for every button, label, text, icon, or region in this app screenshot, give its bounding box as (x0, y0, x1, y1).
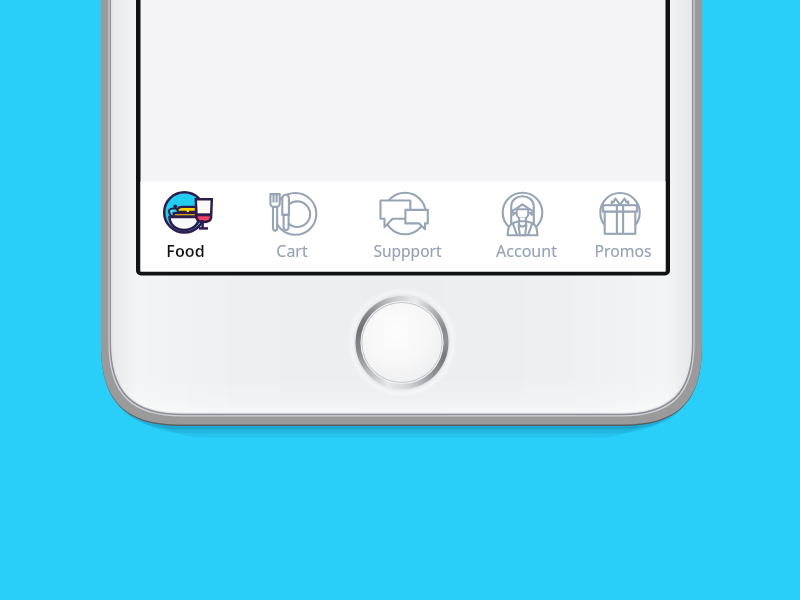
staticText: Promos (594, 240, 652, 262)
staticText: Suppport (373, 240, 442, 261)
staticText: Account (496, 240, 557, 262)
button[interactable]: Cart (239, 182, 344, 272)
button[interactable]: Account (474, 182, 579, 272)
staticText: Food (166, 240, 205, 262)
button[interactable]: Suppport (355, 182, 460, 272)
staticText: Cart (276, 240, 308, 262)
button[interactable]: Food (133, 182, 238, 272)
button[interactable]: Promos (570, 182, 675, 272)
